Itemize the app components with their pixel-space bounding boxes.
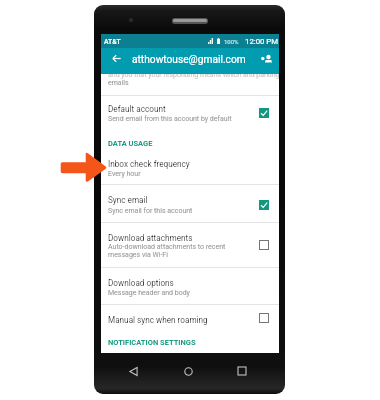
button[interactable]: Home [180,363,196,379]
button[interactable]: Add account [260,52,274,66]
button[interactable] [101,74,279,94]
staticText: Manual sync when roaming [108,315,208,325]
button[interactable] [101,332,279,350]
staticText: Download options [108,278,174,288]
staticText: Message header and body [108,289,190,297]
staticText: emails [108,79,129,87]
staticText: DATA USAGE [108,139,153,148]
staticText: Send email from this account by default [108,115,232,123]
other: Pointer to Inbox check frequency [0,0,380,400]
button[interactable] [101,154,279,182]
staticText: Auto-download attachments to recent mess… [108,243,226,259]
button[interactable] [101,185,279,222]
button[interactable]: Checked [259,108,269,118]
staticText: NOTIFICATION SETTINGS [108,338,196,347]
staticText: Download attachments [108,233,193,243]
button[interactable]: Recent apps [234,363,250,379]
staticText: Default account [108,104,166,114]
staticText: Sync email for this account [108,207,193,215]
staticText: atthowtouse@gmail.com [132,54,246,66]
button[interactable] [101,268,279,303]
button[interactable] [101,223,279,267]
staticText: 12:00 PM [245,37,279,46]
staticText: AT&T [104,38,121,46]
button[interactable]: Navigate up [110,52,123,65]
button[interactable] [101,130,279,145]
button[interactable] [101,305,279,331]
button[interactable]: Checked [259,200,269,210]
staticText: Every hour [108,170,141,178]
button[interactable] [101,96,279,126]
button[interactable]: Unchecked [259,240,269,250]
button[interactable]: Unchecked [259,313,269,323]
button[interactable]: Back [125,363,141,379]
staticText: and you that your responding means which… [108,74,279,79]
staticText: 100% [224,38,239,45]
staticText: Inbox check frequency [108,159,190,169]
staticText: Sync email [108,195,148,205]
